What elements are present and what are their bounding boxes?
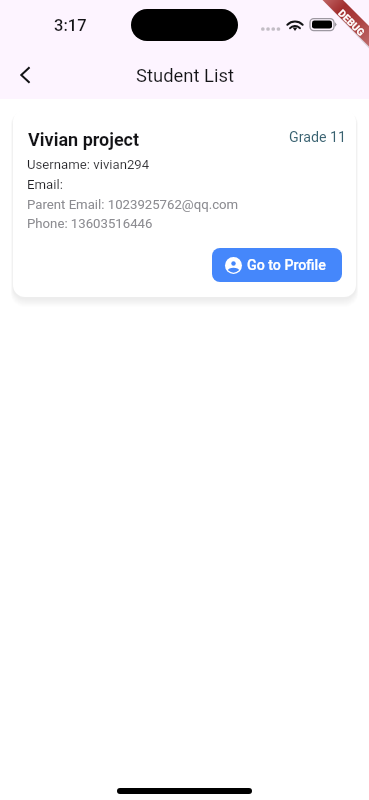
staticText: Parent Email: 1023925762@qq.com — [27, 197, 239, 212]
staticText: Student List — [136, 65, 234, 87]
staticText: Go to Profile — [247, 257, 326, 274]
staticText: Email: — [27, 177, 63, 192]
staticText: Username: vivian294 — [27, 157, 150, 172]
button[interactable]: Back — [3, 53, 47, 97]
staticText: DEBUG — [335, 7, 367, 39]
staticText: Vivian project — [28, 129, 140, 150]
button[interactable]: Vivian project — [13, 110, 356, 297]
staticText: Grade 11 — [289, 129, 346, 146]
staticText: 3:17 — [54, 16, 87, 35]
staticText: Phone: 13603516446 — [27, 216, 153, 231]
button[interactable]: Go to Profile — [212, 248, 342, 282]
